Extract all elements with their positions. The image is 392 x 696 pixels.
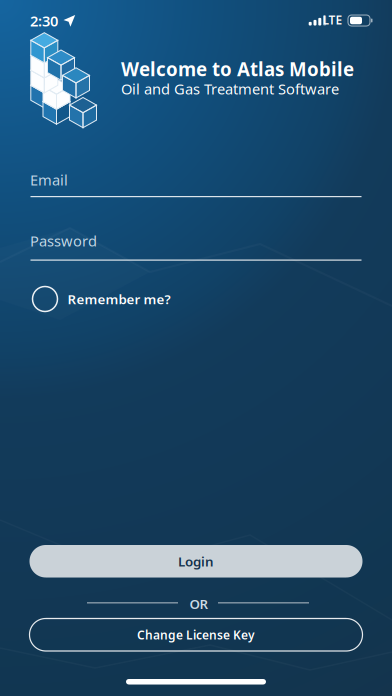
button[interactable]: Login — [29, 545, 362, 577]
staticText: OR — [189, 595, 208, 613]
button[interactable]: Remember me? — [32, 286, 170, 311]
button[interactable]: Email — [30, 170, 361, 199]
staticText: Welcome to Atlas Mobile — [121, 56, 354, 81]
button[interactable]: Change License Key — [29, 618, 362, 651]
button[interactable]: Password — [30, 231, 361, 262]
staticText: LTE — [322, 12, 342, 28]
staticText: Password — [30, 231, 97, 250]
staticText: Change License Key — [137, 627, 255, 643]
staticText: Email — [30, 170, 68, 189]
staticText: Remember me? — [67, 290, 170, 308]
staticText: Oil and Gas Treatment Software — [121, 79, 339, 98]
staticText: 2:30 — [30, 11, 58, 30]
staticText: Login — [178, 552, 214, 570]
